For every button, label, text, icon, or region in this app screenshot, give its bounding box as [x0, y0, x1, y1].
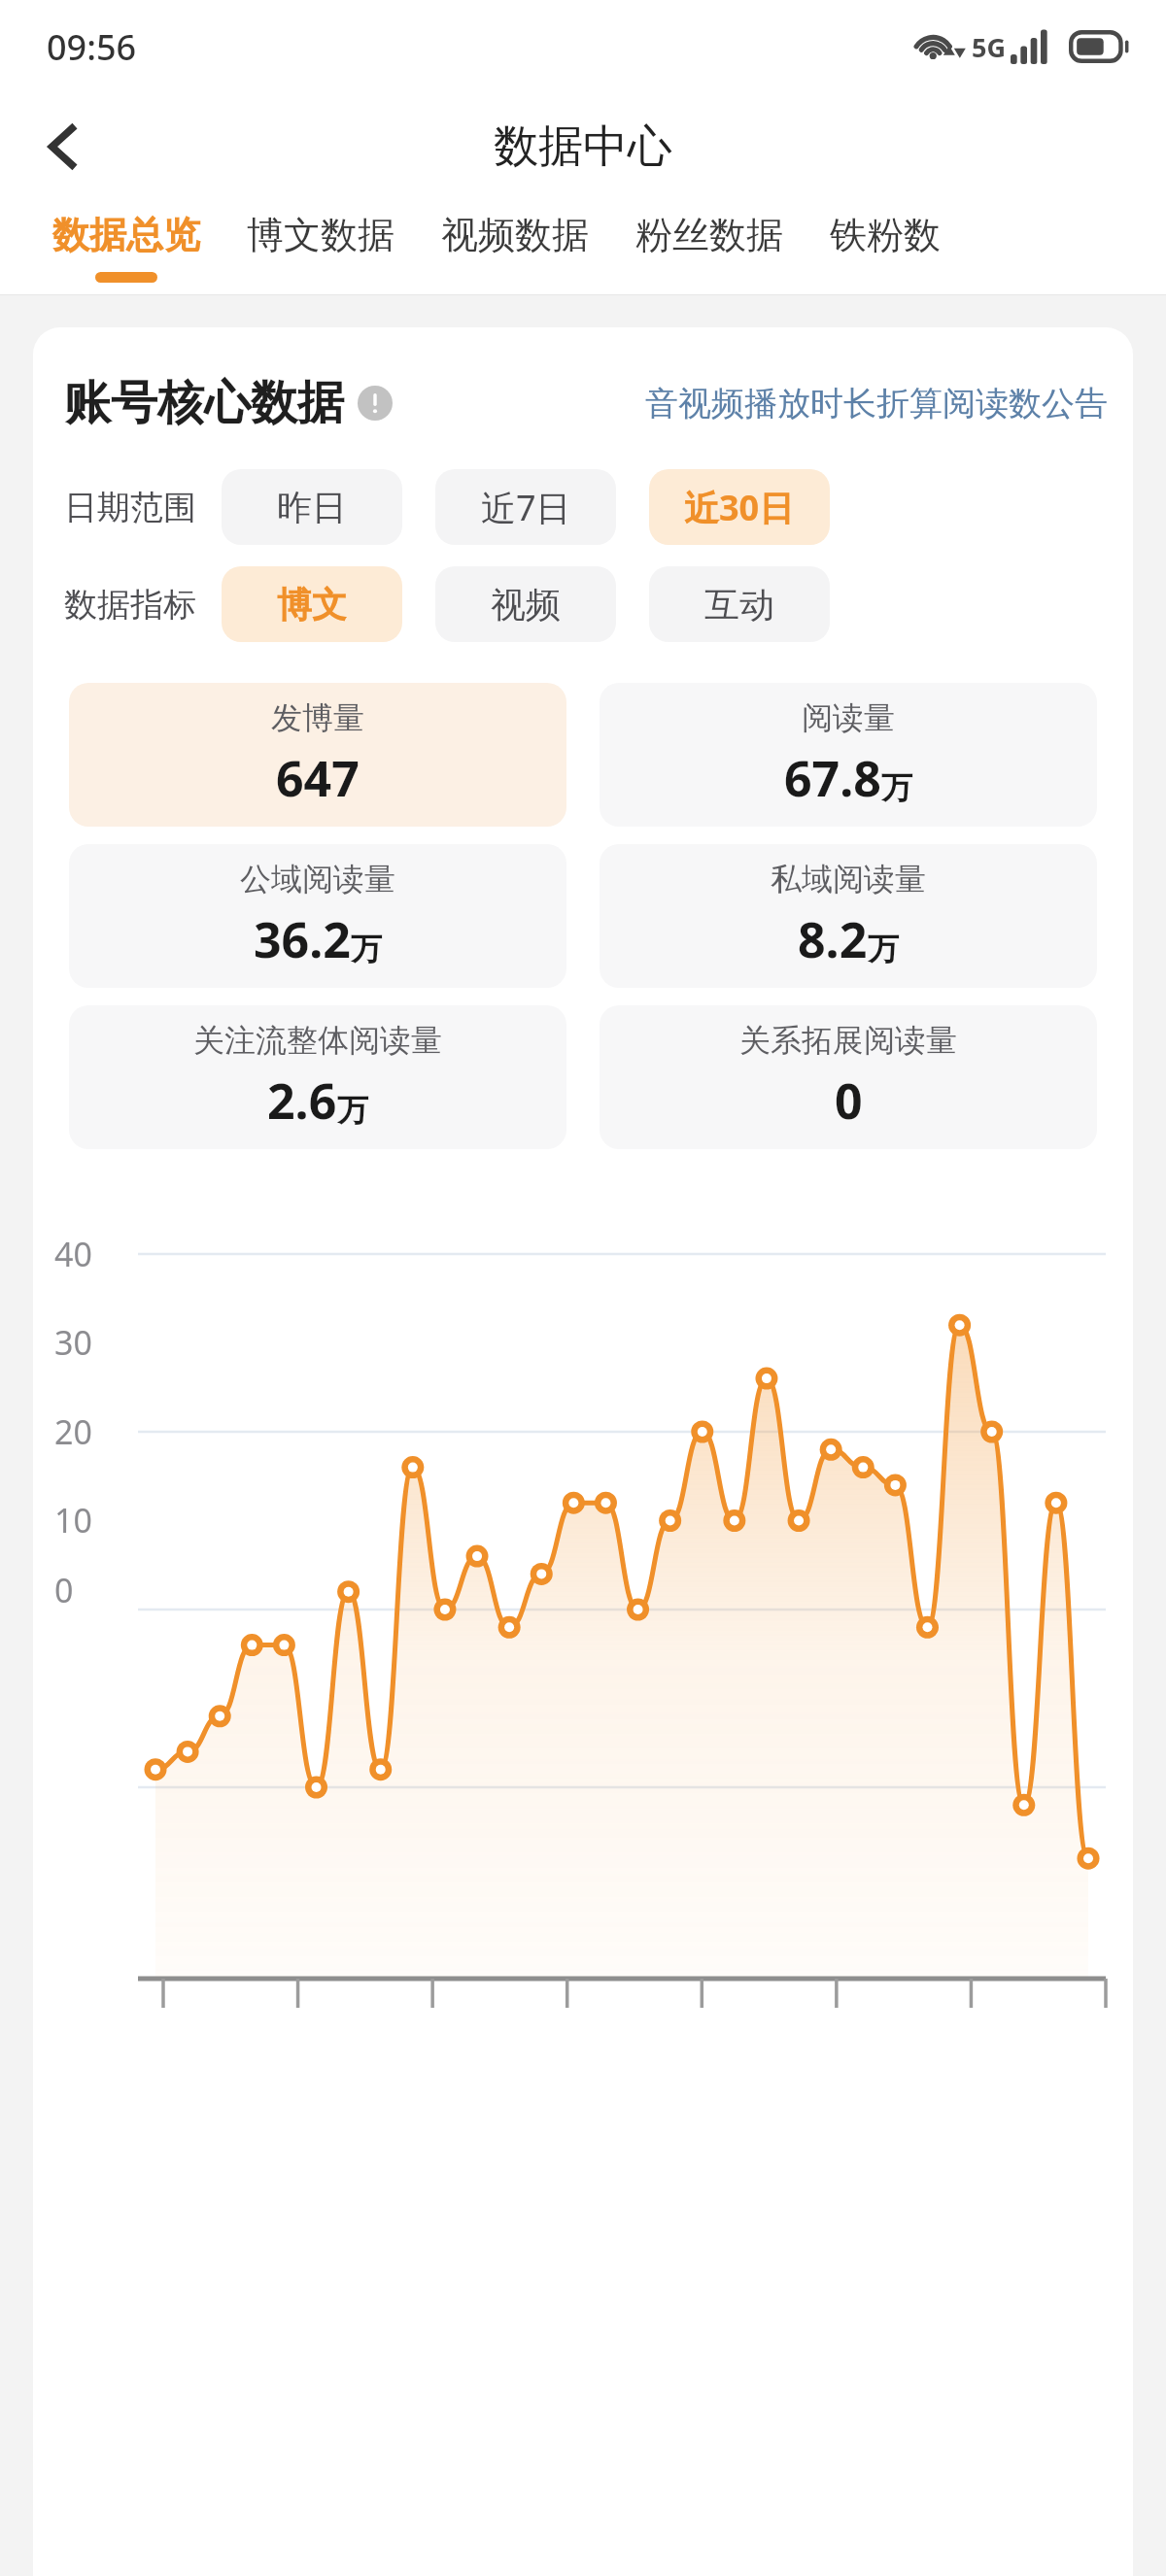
staticText: 10 [54, 1498, 92, 1542]
button[interactable]: 阅读量 [600, 683, 1097, 827]
staticText: 近7日 [481, 484, 571, 531]
staticText: 近30日 [684, 484, 795, 531]
staticText: 视频数据 [441, 212, 589, 258]
staticText: 昨日 [277, 486, 347, 529]
staticText: 发博量 [271, 698, 364, 737]
staticText: 0 [54, 1568, 74, 1612]
button[interactable]: 说明 [358, 386, 393, 421]
staticText: 关注流整体阅读量 [193, 1021, 442, 1060]
staticText: 关系拓展阅读量 [739, 1021, 957, 1060]
button[interactable]: 发博量 [69, 683, 566, 827]
staticText: 粉丝数据 [635, 212, 783, 258]
staticText: 647 [276, 745, 360, 811]
staticText: 公域阅读量 [240, 860, 395, 898]
button[interactable]: 关系拓展阅读量 [600, 1005, 1097, 1149]
button[interactable]: 私域阅读量 [600, 844, 1097, 988]
staticText: 8.2 [798, 906, 868, 972]
button[interactable]: 数据总览 [29, 200, 223, 294]
button[interactable]: 博文 [222, 566, 402, 642]
button[interactable]: 互动 [649, 566, 830, 642]
staticText: 互动 [704, 583, 774, 627]
staticText: 67.8 [784, 745, 881, 811]
button[interactable]: 关注流整体阅读量 [69, 1005, 566, 1149]
staticText: 博文数据 [247, 212, 394, 258]
staticText: 2.6 [267, 1068, 337, 1134]
button[interactable]: 近7日 [435, 469, 616, 545]
staticText: 数据中心 [494, 119, 672, 175]
button[interactable]: Back [21, 105, 105, 188]
staticText: 数据总览 [52, 212, 200, 258]
button[interactable]: 账号核心数据 [64, 374, 344, 432]
button[interactable]: 粉丝数据 [612, 200, 806, 294]
staticText: 万 [337, 1091, 368, 1130]
staticText: 铁粉数 [830, 212, 941, 258]
staticText: 私域阅读量 [771, 860, 926, 898]
staticText: 万 [351, 930, 382, 968]
button[interactable]: 铁粉数 [806, 200, 964, 294]
staticText: 40 [54, 1232, 92, 1276]
staticText: 日期范围 [64, 487, 196, 528]
staticText: 阅读量 [802, 698, 895, 737]
button[interactable]: 音视频播放时长折算阅读数公告 [645, 383, 1108, 424]
button[interactable]: 昨日 [222, 469, 402, 545]
button[interactable]: 视频数据 [418, 200, 612, 294]
button[interactable]: 视频 [435, 566, 616, 642]
button[interactable]: 近30日 [649, 469, 830, 545]
staticText: 博文 [277, 583, 347, 627]
staticText: 36.2 [254, 906, 351, 972]
button[interactable]: 博文数据 [223, 200, 418, 294]
staticText: 20 [54, 1409, 92, 1454]
staticText: 09:56 [47, 23, 137, 71]
staticText: 万 [881, 768, 912, 807]
staticText: 数据指标 [64, 584, 196, 626]
button[interactable]: 公域阅读量 [69, 844, 566, 988]
staticText: 视频 [491, 583, 561, 627]
staticText: 5G [972, 29, 1006, 65]
staticText: 万 [868, 930, 899, 968]
staticText: 0 [835, 1068, 863, 1134]
staticText: 30 [54, 1320, 92, 1365]
